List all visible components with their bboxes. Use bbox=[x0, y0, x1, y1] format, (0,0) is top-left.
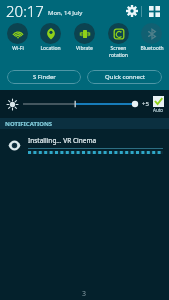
staticText: +5 bbox=[142, 100, 149, 108]
staticText: Bluetooth bbox=[140, 45, 164, 52]
staticText: S Finder bbox=[33, 73, 56, 81]
staticText: Screen rotation bbox=[109, 45, 128, 58]
staticText: Auto bbox=[153, 107, 164, 113]
staticText: Mon, 14 July bbox=[48, 9, 83, 17]
button[interactable]: Quick connect bbox=[87, 70, 162, 84]
staticText: Wi-Fi bbox=[12, 45, 24, 52]
button[interactable]: Brightness bbox=[4, 96, 20, 112]
button[interactable]: Installing... VR Cinema bbox=[0, 129, 169, 161]
staticText: 20:17 bbox=[6, 1, 44, 21]
staticText: Location bbox=[40, 45, 61, 52]
button[interactable]: Screen rotation bbox=[102, 22, 135, 58]
button[interactable]: Brightness slider bbox=[23, 96, 139, 112]
button[interactable]: Wi-Fi bbox=[1, 22, 34, 52]
button[interactable]: Vibrate bbox=[68, 22, 101, 52]
button[interactable]: S Finder bbox=[7, 70, 81, 84]
staticText: 3 bbox=[82, 289, 87, 299]
staticText: NOTIFICATIONS bbox=[5, 120, 53, 128]
button[interactable]: Bluetooth bbox=[135, 22, 168, 52]
staticText: Vibrate bbox=[76, 45, 93, 52]
button[interactable]: Settings bbox=[123, 2, 141, 20]
button[interactable]: Edit quick settings bbox=[145, 2, 163, 20]
staticText: Quick connect bbox=[105, 73, 145, 81]
button[interactable]: Location bbox=[34, 22, 67, 52]
button[interactable]: Auto bbox=[152, 96, 165, 113]
staticText: Installing... VR Cinema bbox=[28, 136, 97, 145]
